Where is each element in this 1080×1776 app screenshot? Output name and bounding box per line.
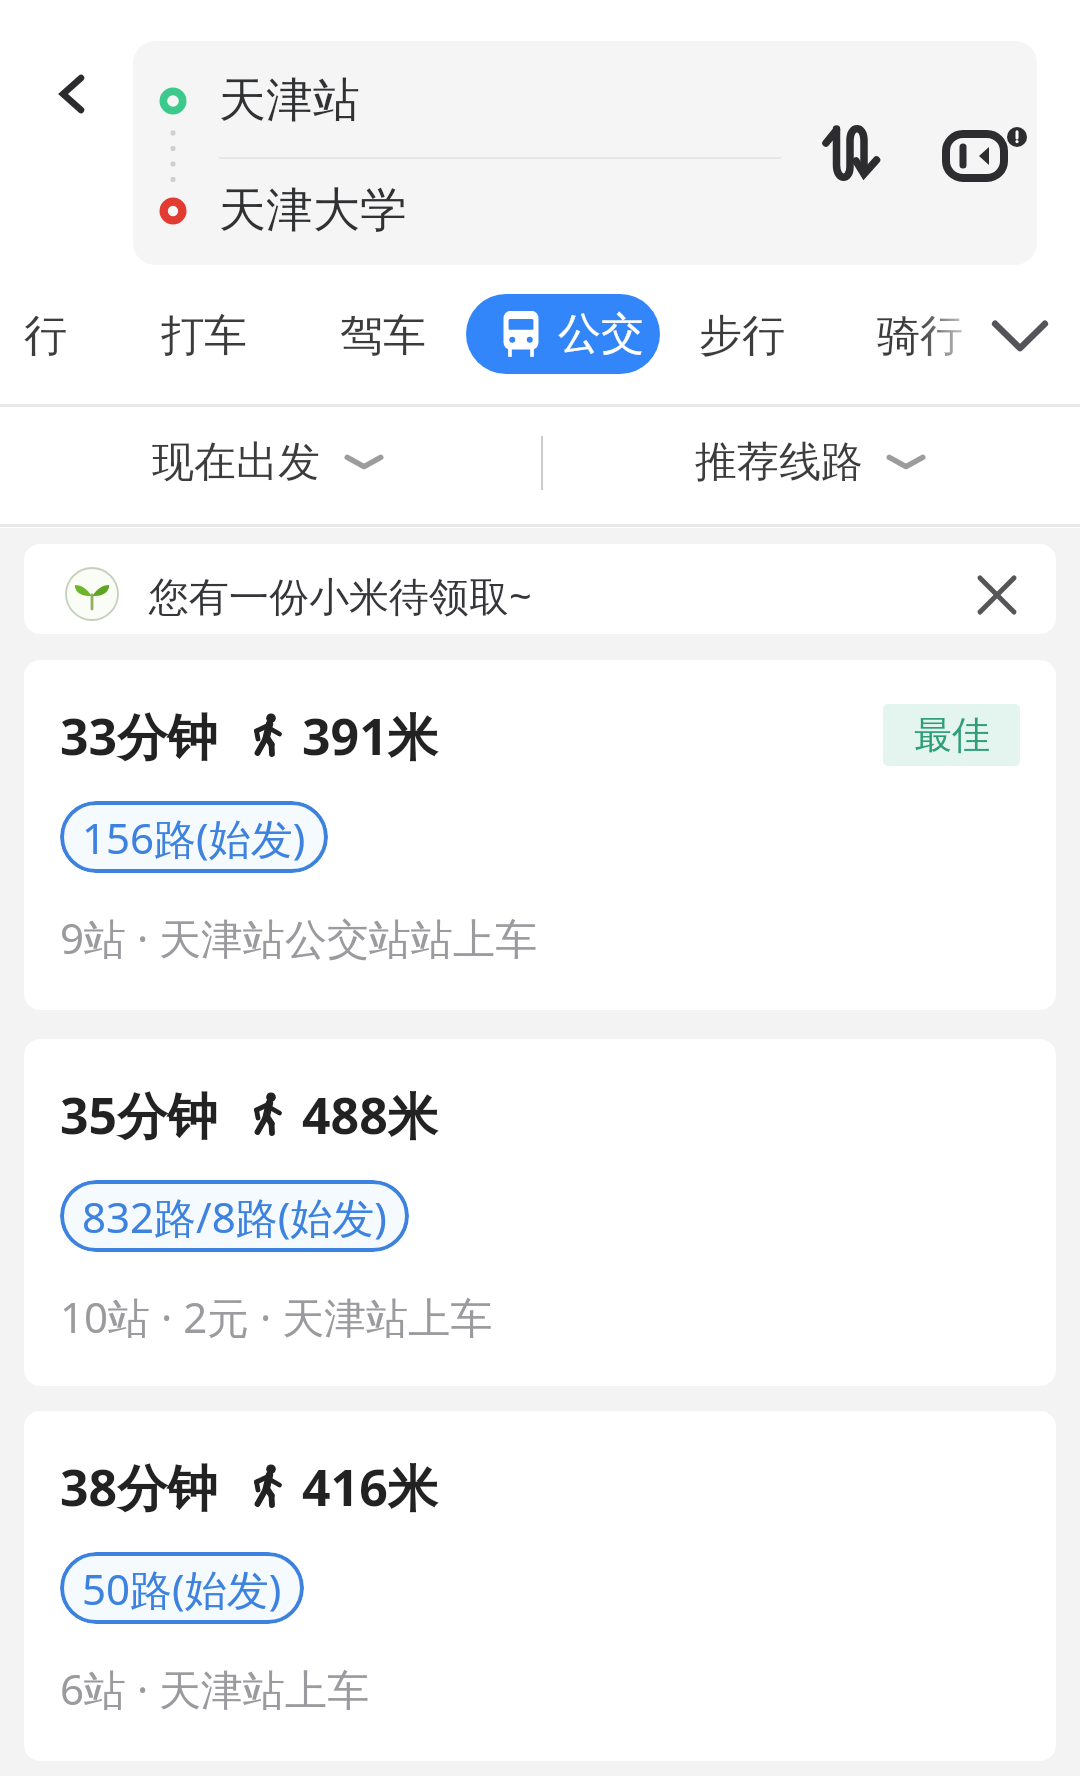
staticText: 38分钟 <box>60 1453 218 1521</box>
button[interactable]: 步行 <box>692 296 792 376</box>
button[interactable]: 天津大学 <box>219 155 779 265</box>
staticText: 9站 · 天津站公交站站上车 <box>60 909 538 966</box>
staticText: 打车 <box>161 309 247 363</box>
button[interactable]: 驾车 <box>327 296 439 376</box>
button[interactable]: 您有一份小米待领取~ <box>24 544 1056 634</box>
staticText: 488米 <box>302 1081 438 1149</box>
staticText: 公交 <box>558 307 644 361</box>
staticText: 6站 · 天津站上车 <box>60 1660 370 1717</box>
button[interactable]: More travel modes <box>976 296 1064 376</box>
staticText: 步行 <box>699 309 785 363</box>
staticText: 832路/8路(始发) <box>82 1188 387 1245</box>
staticText: 您有一份小米待领取~ <box>149 568 532 623</box>
staticText: 现在出发 <box>152 436 320 489</box>
staticText: 10站 · 2元 · 天津站上车 <box>60 1288 493 1345</box>
staticText: 50路(始发) <box>82 1560 282 1617</box>
button[interactable]: 天津站 <box>219 41 779 159</box>
button[interactable]: 行 <box>12 296 78 376</box>
button[interactable]: Back <box>23 45 121 143</box>
staticText: 35分钟 <box>60 1081 218 1149</box>
button[interactable]: 现在出发 <box>140 414 395 510</box>
button[interactable]: 骑行 <box>870 296 970 376</box>
staticText: 416米 <box>302 1453 438 1521</box>
staticText: 33分钟 <box>60 702 218 770</box>
button[interactable]: Close promotion <box>954 552 1039 634</box>
staticText: 391米 <box>302 702 438 770</box>
button[interactable]: 38分钟 <box>24 1411 1056 1761</box>
button[interactable]: 公交 <box>466 294 660 374</box>
button[interactable]: 推荐线路 <box>683 414 937 510</box>
staticText: 骑行 <box>877 309 963 363</box>
button[interactable]: 打车 <box>148 296 260 376</box>
button[interactable]: Swap origin and destination <box>793 93 913 213</box>
staticText: 推荐线路 <box>695 436 863 489</box>
staticText: 最佳 <box>914 711 990 759</box>
button[interactable]: 33分钟 <box>24 660 1056 1010</box>
staticText: 天津站 <box>219 71 360 130</box>
staticText: 驾车 <box>340 309 426 363</box>
button[interactable]: Transit card <box>915 93 1035 213</box>
button[interactable]: 35分钟 <box>24 1039 1056 1386</box>
staticText: 行 <box>24 309 67 363</box>
staticText: 156路(始发) <box>82 809 306 866</box>
staticText: 天津大学 <box>219 181 407 240</box>
